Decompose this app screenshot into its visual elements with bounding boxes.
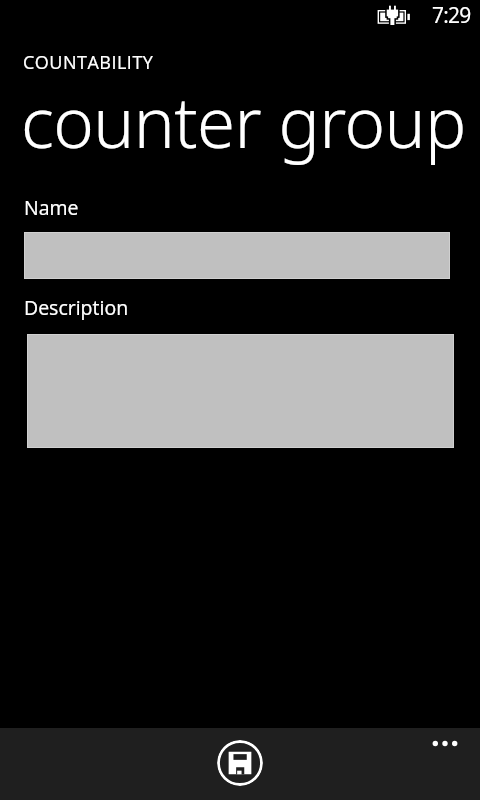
button[interactable]: Save bbox=[217, 740, 263, 786]
staticText: 7:29 bbox=[432, 1, 471, 30]
button[interactable]: More options bbox=[418, 728, 472, 758]
staticText: Name bbox=[24, 194, 79, 221]
staticText: Description bbox=[24, 294, 129, 321]
staticText: counter group bbox=[21, 74, 466, 168]
staticText: COUNTABILITY bbox=[23, 50, 154, 75]
